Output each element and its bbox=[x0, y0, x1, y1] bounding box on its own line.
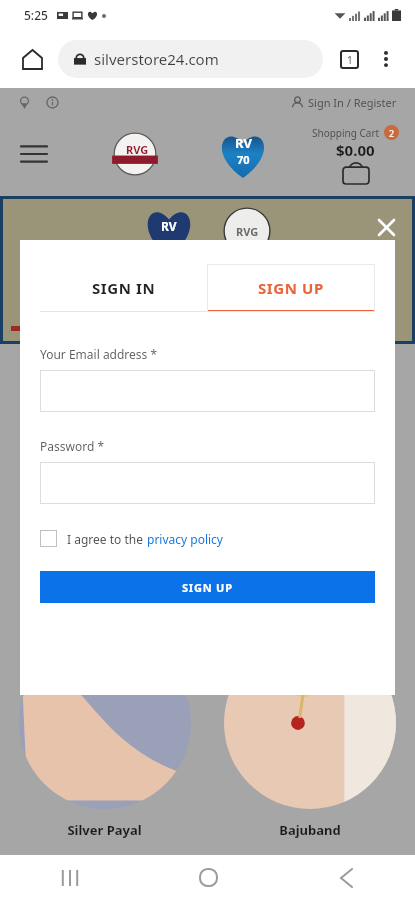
button[interactable]: Close bbox=[373, 214, 399, 240]
staticText: RVG bbox=[126, 142, 149, 157]
button[interactable]: SIGN UP bbox=[207, 264, 375, 312]
button[interactable]: Location bbox=[14, 92, 34, 112]
staticText: 70 bbox=[237, 152, 250, 167]
staticText: 5:25 bbox=[24, 7, 48, 23]
button[interactable]: silverstore24.com bbox=[58, 40, 323, 78]
button[interactable]: Tabs bbox=[329, 39, 369, 79]
button[interactable]: Home bbox=[139, 855, 277, 900]
staticText: RV bbox=[235, 134, 252, 152]
button[interactable]: SIGN UP bbox=[40, 571, 375, 603]
staticText: SIGN UP bbox=[182, 580, 233, 595]
staticText: RV bbox=[161, 218, 177, 234]
button[interactable]: More options bbox=[369, 42, 403, 76]
staticText: SIGN IN bbox=[92, 278, 156, 298]
staticText: Sign In / Register bbox=[308, 95, 397, 110]
button[interactable]: Shopping Cart bbox=[312, 125, 399, 184]
button[interactable]: Back bbox=[277, 855, 415, 900]
staticText: SIGN UP bbox=[258, 278, 324, 298]
button[interactable]: Recents bbox=[0, 855, 139, 900]
staticText: silverstore24.com bbox=[94, 49, 219, 69]
button[interactable]: Sign In / Register bbox=[287, 91, 401, 114]
button[interactable]: SIGN IN bbox=[40, 264, 207, 312]
staticText: Bajuband bbox=[279, 821, 341, 839]
staticText: 2 bbox=[389, 127, 395, 139]
button[interactable]: Silver Payal bbox=[14, 637, 195, 839]
button[interactable]: Menu bbox=[12, 132, 56, 176]
staticText: Shopping Cart bbox=[312, 126, 380, 140]
staticText: Silver Payal bbox=[67, 821, 142, 839]
staticText: I agree to the bbox=[67, 531, 147, 547]
button[interactable]: I agree to the bbox=[40, 530, 223, 547]
staticText: RVG bbox=[236, 224, 259, 239]
button[interactable] bbox=[40, 462, 375, 504]
button[interactable]: Home bbox=[12, 39, 52, 79]
button[interactable] bbox=[40, 370, 375, 412]
staticText: privacy policy bbox=[147, 531, 223, 547]
staticText: 1 bbox=[347, 53, 353, 67]
button[interactable]: Info bbox=[42, 92, 62, 112]
staticText: $0.00 bbox=[336, 140, 375, 160]
staticText: Password * bbox=[40, 438, 105, 454]
staticText: Your Email address * bbox=[40, 346, 158, 362]
button[interactable]: Bajuband bbox=[219, 637, 401, 839]
